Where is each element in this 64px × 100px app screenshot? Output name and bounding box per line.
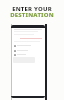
staticText: DESTINATION [10, 11, 54, 19]
button[interactable] [13, 53, 44, 56]
button[interactable] [13, 44, 44, 47]
staticText: ENTER YOUR [12, 5, 52, 13]
button[interactable] [13, 49, 44, 52]
